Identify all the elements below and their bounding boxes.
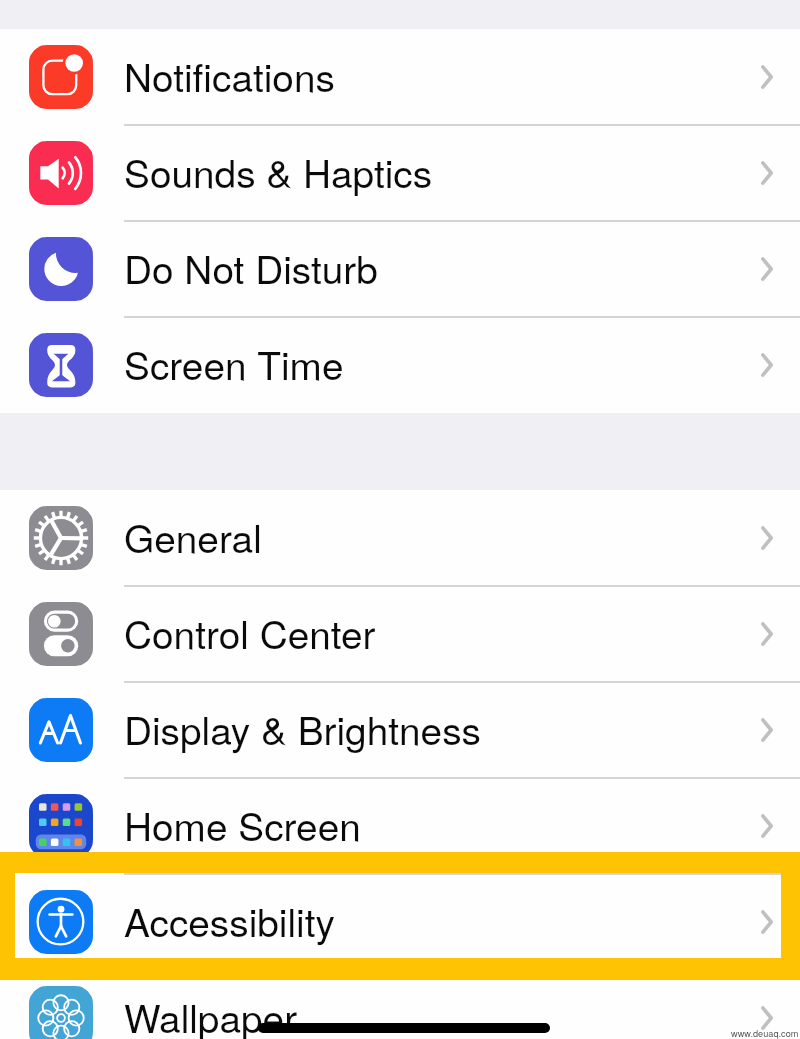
staticText: Wallpaper — [124, 988, 298, 1039]
other: Open — [761, 622, 773, 646]
staticText: Notifications — [124, 47, 335, 103]
other: Open — [761, 353, 773, 377]
button[interactable]: General — [0, 490, 800, 586]
other: Open — [761, 910, 773, 934]
staticText: www.deuaq.com — [731, 1026, 799, 1039]
button[interactable]: Wallpaper — [0, 970, 800, 1039]
staticText: Control Center — [124, 604, 376, 660]
button[interactable]: Home Screen — [0, 778, 800, 874]
staticText: Home Screen — [124, 796, 361, 852]
other: Open — [761, 1006, 773, 1030]
staticText: Do Not Disturb — [124, 239, 378, 295]
button[interactable]: Accessibility — [0, 874, 800, 970]
other: Open — [761, 257, 773, 281]
button[interactable]: Control Center — [0, 586, 800, 682]
staticText: Screen Time — [124, 335, 344, 391]
staticText: Display & Brightness — [124, 700, 481, 756]
staticText: Accessibility — [124, 892, 335, 948]
staticText: General — [124, 508, 262, 564]
other: Open — [761, 65, 773, 89]
button[interactable]: Sounds & Haptics — [0, 125, 800, 221]
button[interactable]: Screen Time — [0, 317, 800, 413]
other: Open — [761, 814, 773, 838]
button[interactable]: Do Not Disturb — [0, 221, 800, 317]
other: Open — [761, 718, 773, 742]
other: Open — [761, 526, 773, 550]
staticText: Sounds & Haptics — [124, 143, 433, 199]
button[interactable]: Notifications — [0, 29, 800, 125]
button[interactable]: Display & Brightness — [0, 682, 800, 778]
other: Open — [761, 161, 773, 185]
